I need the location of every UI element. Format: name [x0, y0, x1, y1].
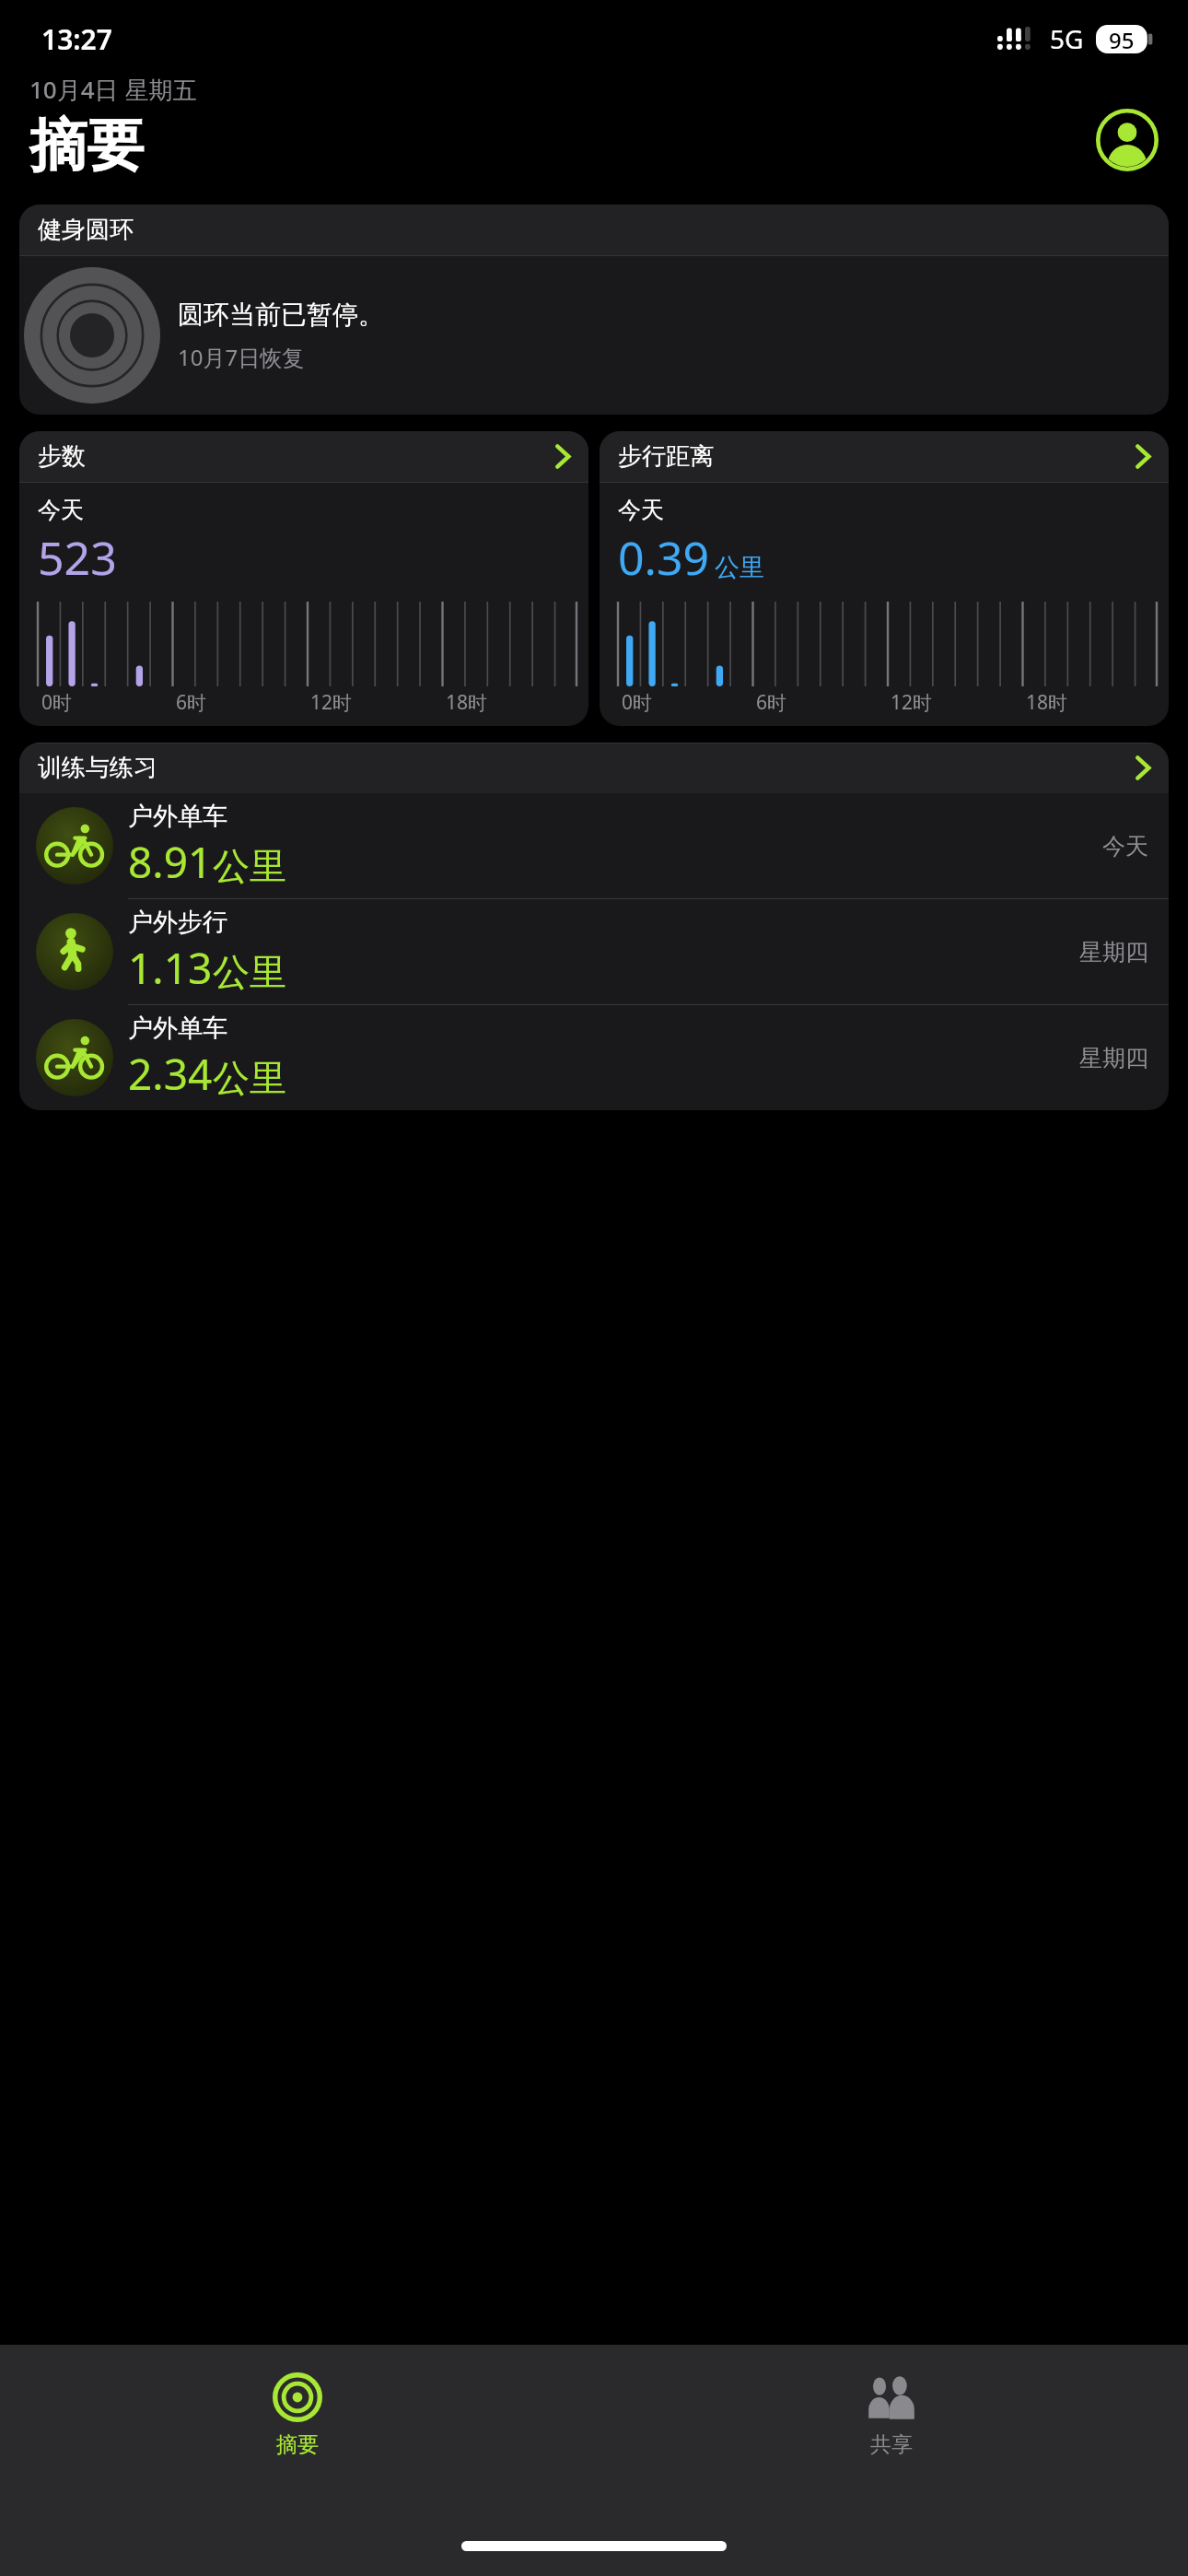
staticText: 公里: [213, 1055, 286, 1101]
staticText: 18时: [446, 689, 488, 715]
button[interactable]: 户外单车: [19, 793, 1169, 899]
staticText: 0时: [622, 689, 653, 715]
staticText: 13:27: [41, 20, 112, 58]
staticText: 摘要: [276, 2431, 319, 2458]
staticText: 星期四: [1079, 1044, 1148, 1072]
staticText: 8.91: [128, 833, 213, 891]
staticText: 95: [1109, 25, 1135, 53]
staticText: 户外步行: [128, 907, 227, 938]
staticText: 圆环当前已暂停。: [178, 299, 384, 331]
button[interactable]: 摘要: [0, 2345, 594, 2485]
staticText: 星期四: [1079, 938, 1148, 966]
button[interactable]: 训练与练习: [19, 743, 1169, 793]
button[interactable]: 户外步行: [19, 899, 1169, 1005]
staticText: 户外单车: [128, 801, 227, 832]
staticText: 今天: [618, 496, 664, 524]
staticText: 训练与练习: [38, 753, 157, 783]
staticText: 共享: [870, 2431, 913, 2458]
staticText: 12时: [891, 689, 933, 715]
staticText: 健身圆环: [38, 215, 134, 245]
staticText: 10月4日 星期五: [29, 73, 197, 106]
staticText: 2.34: [128, 1045, 213, 1103]
button[interactable]: 步行距离: [600, 431, 1169, 726]
staticText: 公里: [213, 949, 286, 995]
staticText: 1.13: [128, 939, 213, 997]
staticText: 12时: [310, 689, 353, 715]
staticText: 523: [38, 526, 117, 589]
staticText: 公里: [213, 843, 286, 889]
staticText: 6时: [176, 689, 207, 715]
button[interactable]: 步数: [19, 431, 588, 726]
button[interactable]: 户外单车: [19, 1005, 1169, 1110]
staticText: 10月7日恢复: [178, 342, 305, 372]
staticText: 户外单车: [128, 1013, 227, 1044]
staticText: 步数: [38, 441, 86, 472]
button[interactable]: 健身圆环: [19, 205, 1169, 415]
staticText: 步行距离: [618, 441, 714, 472]
staticText: 0.39: [618, 526, 710, 589]
staticText: 5G: [1050, 21, 1084, 56]
staticText: 摘要: [29, 110, 144, 181]
staticText: 今天: [1102, 832, 1148, 861]
staticText: 0时: [41, 689, 73, 715]
staticText: 6时: [756, 689, 787, 715]
staticText: 18时: [1026, 689, 1068, 715]
staticText: 公里: [715, 552, 764, 583]
staticText: 今天: [38, 496, 84, 524]
button[interactable]: 共享: [594, 2345, 1188, 2485]
button[interactable]: 个人资料: [1096, 109, 1159, 171]
